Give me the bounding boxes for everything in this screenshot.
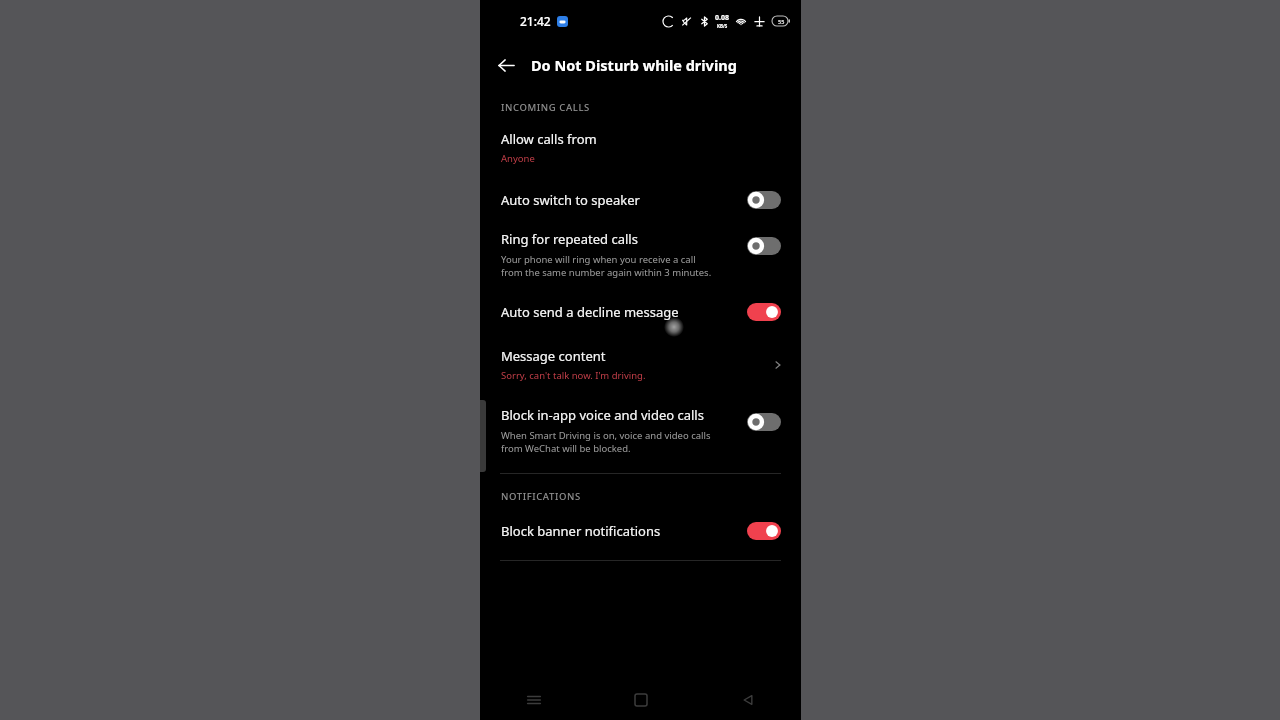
staticText: Allow calls from xyxy=(501,130,597,148)
staticText: Sorry, can't talk now. I'm driving. xyxy=(501,369,646,382)
button[interactable]: Ring for repeated calls xyxy=(480,228,801,281)
staticText: 55 xyxy=(778,18,785,25)
staticText: INCOMING CALLS xyxy=(501,101,590,114)
staticText: NOTIFICATIONS xyxy=(501,490,581,503)
staticText: KB/S xyxy=(717,23,728,29)
staticText: 0.08 xyxy=(715,13,729,23)
staticText: Do Not Disturb while driving xyxy=(531,55,737,75)
staticText: Auto send a decline message xyxy=(501,303,747,321)
staticText: Auto switch to speaker xyxy=(501,191,747,209)
staticText: 21:42 xyxy=(520,13,551,29)
button[interactable]: Off xyxy=(747,413,781,431)
staticText: Ring for repeated calls xyxy=(501,230,638,248)
staticText: When Smart Driving is on, voice and vide… xyxy=(501,429,711,455)
button[interactable]: On xyxy=(747,303,781,321)
button[interactable]: Block in-app voice and video calls xyxy=(480,404,801,457)
button[interactable]: Auto send a decline message xyxy=(480,301,801,323)
button[interactable]: Back xyxy=(694,680,801,720)
staticText: Message content xyxy=(501,347,606,365)
staticText: Anyone xyxy=(501,152,535,165)
button[interactable]: Recent apps xyxy=(480,680,587,720)
button[interactable]: Off xyxy=(747,237,781,255)
staticText: Block in-app voice and video calls xyxy=(501,406,704,424)
button[interactable]: Allow calls from xyxy=(480,128,801,167)
button[interactable]: Auto switch to speaker xyxy=(480,189,801,211)
button[interactable]: Home xyxy=(587,680,694,720)
staticText: Your phone will ring when you receive a … xyxy=(501,253,712,279)
button[interactable]: Off xyxy=(747,191,781,209)
button[interactable]: Back xyxy=(490,49,522,81)
button[interactable]: On xyxy=(747,522,781,540)
button[interactable]: Message content xyxy=(480,345,801,384)
staticText: Block banner notifications xyxy=(501,522,747,540)
button[interactable]: Block banner notifications xyxy=(480,520,801,542)
